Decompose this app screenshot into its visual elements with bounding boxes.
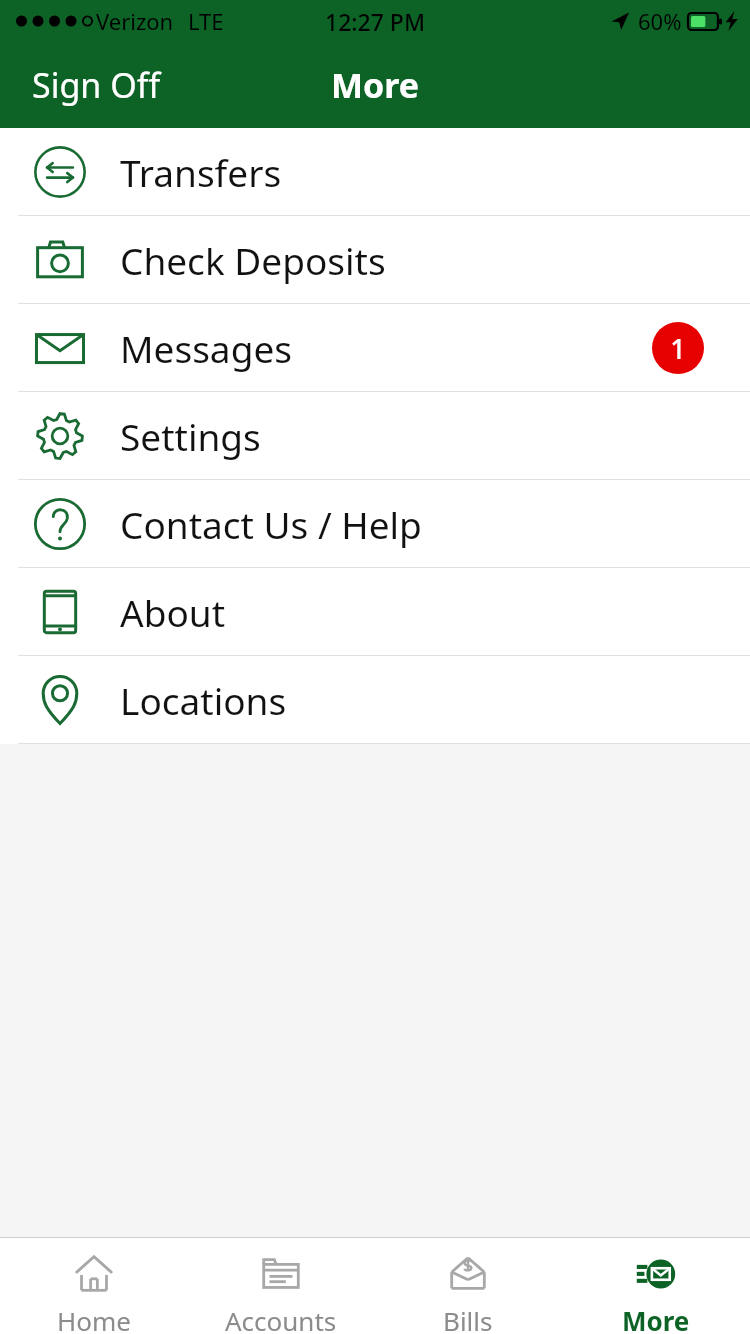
button[interactable]: Check Deposits <box>0 216 750 303</box>
staticText: 1 <box>670 330 686 367</box>
button[interactable]: More <box>562 1238 750 1334</box>
staticText: Verizon <box>96 6 174 36</box>
staticText: More <box>331 62 420 108</box>
button[interactable]: Settings <box>0 392 750 479</box>
button[interactable]: Contact Us / Help <box>0 480 750 567</box>
staticText: About <box>120 587 226 637</box>
staticText: Contact Us / Help <box>120 499 422 549</box>
button[interactable]: Home <box>0 1238 187 1334</box>
button[interactable]: Bills <box>374 1238 562 1334</box>
button[interactable]: Locations <box>0 656 750 743</box>
staticText: More <box>622 1303 690 1334</box>
staticText: Accounts <box>225 1303 337 1334</box>
staticText: Locations <box>120 675 287 725</box>
staticText: Messages <box>120 323 292 373</box>
staticText: Home <box>57 1303 131 1334</box>
staticText: Bills <box>443 1303 493 1334</box>
button[interactable]: Messages <box>0 304 750 391</box>
staticText: Transfers <box>120 147 282 197</box>
button[interactable]: About <box>0 568 750 655</box>
staticText: 60% <box>638 6 682 36</box>
button[interactable]: Sign Off <box>0 48 193 122</box>
staticText: Check Deposits <box>120 235 386 285</box>
staticText: 12:27 PM <box>325 6 426 37</box>
staticText: Sign Off <box>32 62 161 108</box>
staticText: LTE <box>188 6 224 36</box>
button[interactable]: Accounts <box>187 1238 374 1334</box>
staticText: Settings <box>120 411 261 461</box>
button[interactable]: Transfers <box>0 128 750 215</box>
